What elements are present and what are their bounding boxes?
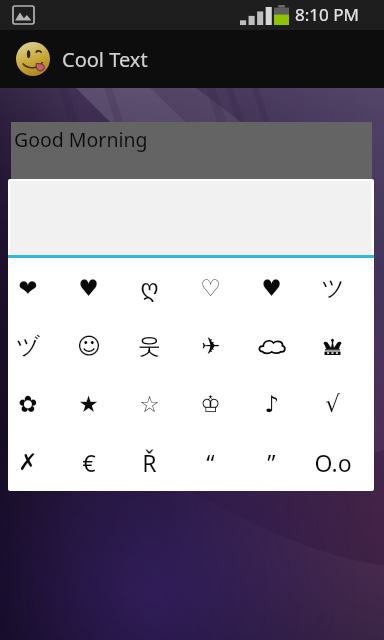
button[interactable]: ✈: [180, 317, 241, 375]
staticText: ★: [78, 391, 99, 418]
staticText: ❤: [18, 275, 38, 302]
staticText: √: [325, 391, 340, 418]
button[interactable]: Good Morning: [11, 122, 372, 179]
staticText: ✿: [18, 391, 38, 418]
staticText: ♔: [200, 391, 221, 418]
staticText: “: [206, 447, 215, 478]
staticText: ♥: [261, 275, 282, 302]
staticText: ツ: [321, 274, 345, 303]
button[interactable]: ღ: [119, 259, 180, 317]
button[interactable]: ✿: [8, 375, 58, 433]
staticText: ♥: [78, 275, 99, 302]
staticText: €: [82, 447, 96, 478]
button[interactable]: €: [58, 433, 119, 491]
button[interactable]: ✗: [8, 433, 58, 491]
staticText: Cool Text: [62, 46, 148, 73]
button[interactable]: O.o: [302, 433, 363, 491]
button[interactable]: ♥: [241, 259, 302, 317]
other: App icon: [16, 42, 50, 76]
button[interactable]: ”: [241, 433, 302, 491]
button[interactable]: ☆: [119, 375, 180, 433]
staticText: 웃: [138, 332, 161, 361]
button[interactable]: ♪: [241, 375, 302, 433]
staticText: Ř: [142, 447, 157, 478]
button[interactable]: ♔: [180, 375, 241, 433]
staticText: ✈: [201, 333, 221, 360]
staticText: Good Morning: [14, 126, 148, 153]
staticText: O.o: [314, 447, 352, 478]
staticText: ✗: [18, 449, 38, 476]
staticText: ღ: [140, 275, 159, 302]
button[interactable]: ★: [58, 375, 119, 433]
button[interactable]: 웃: [119, 317, 180, 375]
staticText: 8:10 PM: [295, 3, 359, 26]
button[interactable]: ヅ: [8, 317, 58, 375]
button[interactable]: ♡: [180, 259, 241, 317]
button[interactable]: ♥: [58, 259, 119, 317]
button[interactable]: “: [180, 433, 241, 491]
button[interactable]: √: [302, 375, 363, 433]
button[interactable]: [302, 317, 363, 375]
staticText: ヅ: [16, 332, 40, 361]
button[interactable]: ツ: [302, 259, 363, 317]
staticText: ♡: [200, 275, 221, 302]
button[interactable]: [241, 317, 302, 375]
other: Image notification: [13, 5, 34, 25]
staticText: ☺: [77, 333, 101, 360]
staticText: ”: [267, 447, 276, 478]
button[interactable]: ☺: [58, 317, 119, 375]
button[interactable]: ❤: [8, 259, 58, 317]
staticText: ♪: [264, 391, 279, 418]
button[interactable]: App icon: [0, 30, 384, 88]
staticText: ☆: [139, 391, 160, 418]
button[interactable]: Ř: [119, 433, 180, 491]
